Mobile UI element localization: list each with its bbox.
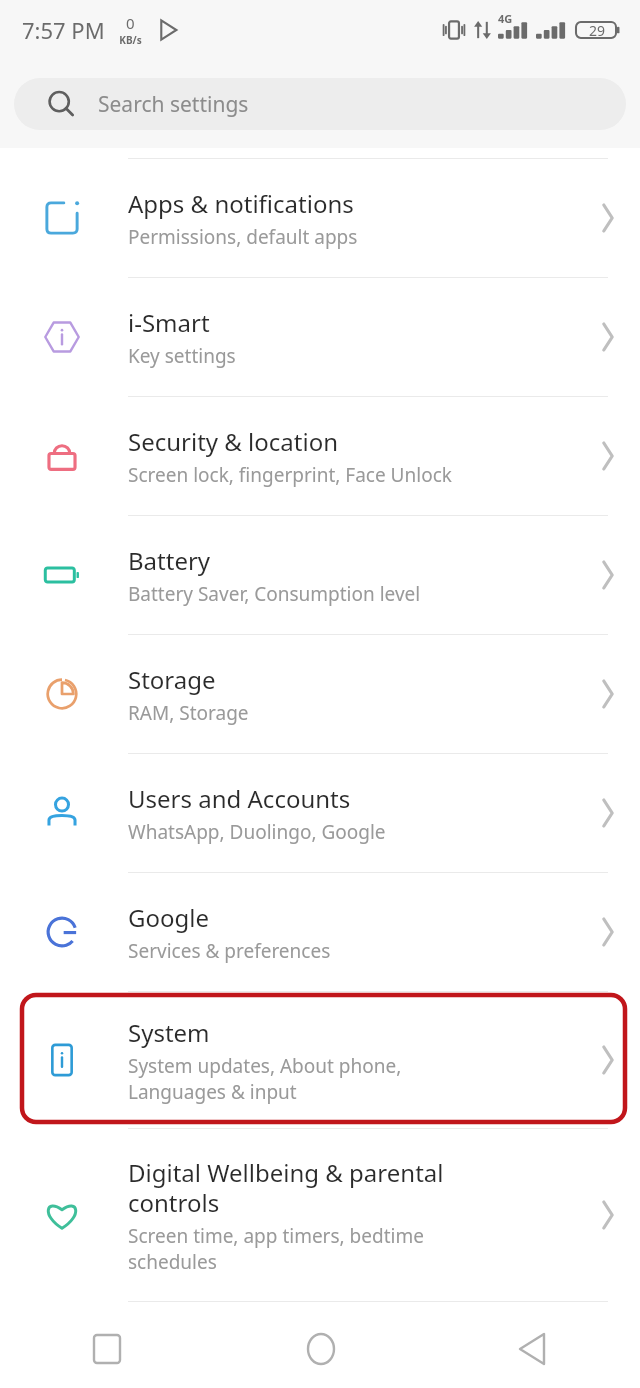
button[interactable]: Digital Wellbeing & parental controls <box>0 1129 640 1301</box>
button[interactable]: Apps & notifications <box>0 159 640 277</box>
staticText: Permissions, default apps <box>128 224 358 250</box>
button[interactable]: Users and Accounts <box>0 754 640 872</box>
staticText: 4G <box>498 11 513 26</box>
staticText: RAM, Storage <box>128 700 249 726</box>
staticText: 29 <box>589 21 606 40</box>
button[interactable]: Battery <box>0 516 640 634</box>
staticText: Key settings <box>128 343 236 369</box>
staticText: Users and Accounts <box>128 782 351 815</box>
staticText: i-Smart <box>128 306 210 339</box>
staticText: Battery Saver, Consumption level <box>128 581 421 607</box>
staticText: Screen lock, fingerprint, Face Unlock <box>128 462 452 488</box>
button[interactable]: i-Smart <box>0 278 640 396</box>
staticText: Apps & notifications <box>128 187 354 220</box>
staticText: 7:57 PM <box>22 15 105 45</box>
button[interactable]: Home <box>214 1310 427 1388</box>
staticText: System updates, About phone, Languages &… <box>128 1053 402 1104</box>
staticText: Screen time, app timers, bedtime schedul… <box>128 1223 424 1274</box>
staticText: Digital Wellbeing & parental controls <box>128 1156 444 1219</box>
staticText: 0 <box>126 13 135 33</box>
button[interactable]: Security & location <box>0 397 640 515</box>
staticText: Search settings <box>98 90 249 119</box>
staticText: Services & preferences <box>128 938 331 964</box>
button[interactable]: Storage <box>0 635 640 753</box>
button[interactable]: Recents <box>0 1310 214 1388</box>
staticText: KB/s <box>119 33 142 47</box>
button[interactable]: Google <box>0 873 640 991</box>
staticText: Google <box>128 901 209 934</box>
staticText: Storage <box>128 663 216 696</box>
button[interactable]: Search settings <box>14 78 626 130</box>
staticText: WhatsApp, Duolingo, Google <box>128 819 386 845</box>
staticText: System <box>128 1016 210 1049</box>
button[interactable]: System <box>0 992 640 1128</box>
staticText: Security & location <box>128 425 339 458</box>
staticText: Battery <box>128 544 211 577</box>
button[interactable]: Back <box>427 1310 640 1388</box>
